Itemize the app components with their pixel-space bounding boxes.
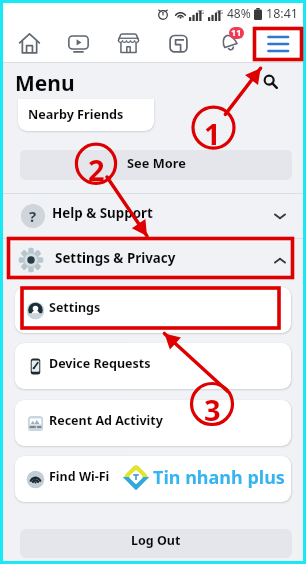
staticText: See More	[127, 154, 186, 171]
staticText: 4G	[216, 8, 224, 15]
staticText: Settings & Privacy	[55, 249, 176, 267]
staticText: 3	[204, 390, 221, 422]
staticText: 3G	[197, 8, 205, 15]
button[interactable]: Groups	[159, 25, 197, 62]
staticText: Menu	[15, 69, 75, 98]
staticText: ?	[29, 206, 37, 226]
staticText: 48%	[227, 5, 251, 21]
button[interactable]: Recent Ad Activity	[15, 400, 291, 446]
button[interactable]: Video	[59, 25, 97, 62]
button[interactable]: Log Out	[20, 529, 292, 558]
staticText: 2	[88, 150, 105, 182]
button[interactable]: Settings	[15, 287, 291, 333]
staticText: Recent Ad Activity	[49, 412, 163, 429]
button[interactable]: Device Requests	[15, 343, 291, 389]
button[interactable]: Menu	[258, 31, 298, 57]
staticText: 11	[231, 27, 242, 38]
staticText: Find Wi-Fi	[49, 468, 110, 485]
staticText: Log Out	[131, 532, 181, 549]
button[interactable]: Search	[258, 69, 282, 93]
button[interactable]: ?	[3, 194, 303, 238]
button[interactable]: Find Wi-Fi	[15, 456, 291, 502]
staticText: Device Requests	[49, 355, 151, 372]
button[interactable]: See More	[20, 150, 292, 180]
staticText: 1	[204, 114, 221, 146]
button[interactable]: Settings & Privacy	[3, 239, 303, 283]
staticText: Help & Support	[52, 204, 153, 222]
staticText: Tin nhanh plus	[153, 465, 285, 490]
button[interactable]: Marketplace	[109, 25, 147, 62]
staticText: Nearby Friends	[28, 106, 124, 123]
staticText: 18:41	[266, 5, 298, 22]
button[interactable]: Notifications	[210, 25, 246, 62]
button[interactable]: Home	[10, 25, 48, 62]
button[interactable]: Nearby Friends	[18, 99, 154, 131]
staticText: Settings	[49, 299, 101, 316]
